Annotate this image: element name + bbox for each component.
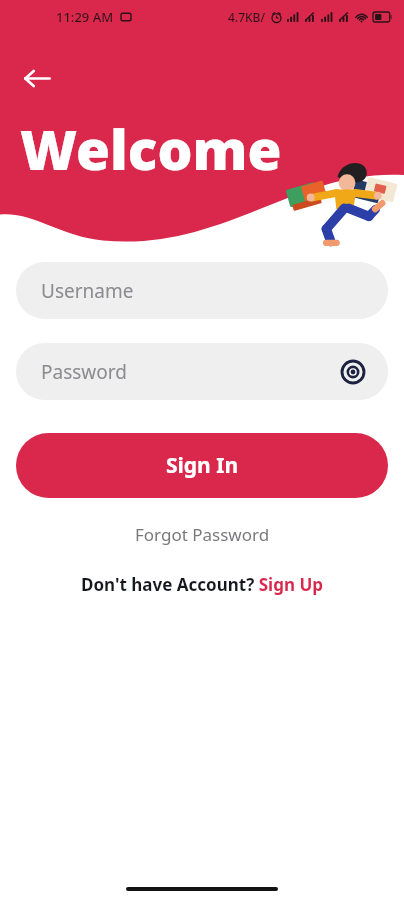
staticText: Username <box>41 278 134 304</box>
button[interactable]: Back <box>15 56 59 100</box>
button[interactable]: Sign In <box>16 433 388 498</box>
button[interactable]: Don't have Account? Sign Up <box>0 567 404 602</box>
staticText: Sign In <box>166 451 239 480</box>
staticText: 4.7KB/ <box>228 9 266 25</box>
staticText: 11:29 AM <box>56 8 114 26</box>
button[interactable]: Forgot Password <box>0 517 404 552</box>
staticText: Forgot Password <box>135 523 270 546</box>
button[interactable]: Password <box>16 343 388 400</box>
button[interactable]: Username <box>16 262 388 319</box>
staticText: Welcome <box>20 111 282 186</box>
staticText: Don't have Account? Sign Up <box>81 573 323 596</box>
button[interactable]: Show password <box>338 357 368 387</box>
staticText: Password <box>41 359 127 385</box>
